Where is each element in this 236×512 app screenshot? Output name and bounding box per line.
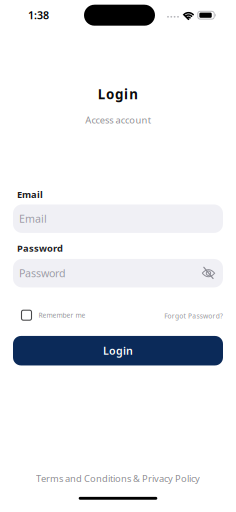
button[interactable]: Show password xyxy=(201,265,216,280)
staticText: Email xyxy=(19,212,47,226)
button[interactable]: Login xyxy=(13,336,223,365)
staticText: Login xyxy=(103,344,133,358)
staticText: Forgot Password? xyxy=(164,312,223,320)
staticText: Password xyxy=(19,266,66,280)
staticText: Login xyxy=(98,85,138,103)
button[interactable]: Forgot Password? xyxy=(164,312,223,320)
button[interactable]: Remember me xyxy=(21,310,85,320)
button[interactable]: Terms and Conditions & Privacy Policy xyxy=(36,472,200,484)
staticText: Terms and Conditions & Privacy Policy xyxy=(36,472,200,484)
staticText: Remember me xyxy=(38,311,85,320)
staticText: 1:38 xyxy=(28,8,49,22)
staticText: Email xyxy=(17,188,43,201)
staticText: Access account xyxy=(85,114,151,126)
staticText: Password xyxy=(17,242,63,254)
